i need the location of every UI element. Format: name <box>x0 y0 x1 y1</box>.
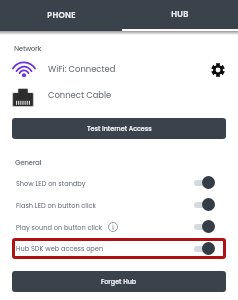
button[interactable]: Toggle <box>194 242 214 255</box>
staticText: Network <box>14 43 42 53</box>
button[interactable]: Hub SDK web access open <box>12 238 226 259</box>
staticText: WiFi: Connected <box>48 63 116 75</box>
button[interactable]: Forget Hub <box>12 271 226 292</box>
staticText: Show LED on standby <box>16 179 86 188</box>
other: WiFi settings <box>211 64 225 76</box>
button[interactable]: Toggle <box>194 220 214 233</box>
button[interactable]: Toggle <box>194 176 214 189</box>
staticText: Forget Hub <box>101 277 137 286</box>
staticText: General <box>15 157 42 167</box>
button[interactable]: Toggle <box>194 198 214 211</box>
button[interactable]: HUB <box>122 0 238 31</box>
staticText: PHONE <box>47 10 76 21</box>
button[interactable]: PHONE <box>0 0 122 31</box>
button[interactable]: WiFi: Connected <box>0 58 238 84</box>
other: More info <box>108 222 118 232</box>
staticText: Hub SDK web access open <box>16 244 104 253</box>
button[interactable]: Show LED on standby <box>0 172 238 194</box>
staticText: Test Internet Access <box>87 124 152 133</box>
button[interactable]: Flash LED on button click <box>0 194 238 216</box>
staticText: HUB <box>171 9 189 20</box>
staticText: Connect Cable <box>48 89 112 101</box>
button[interactable]: Connect Cable <box>0 84 238 110</box>
button[interactable]: Test Internet Access <box>12 118 226 139</box>
staticText: Flash LED on button click <box>16 201 97 210</box>
button[interactable]: Play sound on button click <box>0 216 238 238</box>
staticText: Play sound on button click <box>16 223 103 232</box>
